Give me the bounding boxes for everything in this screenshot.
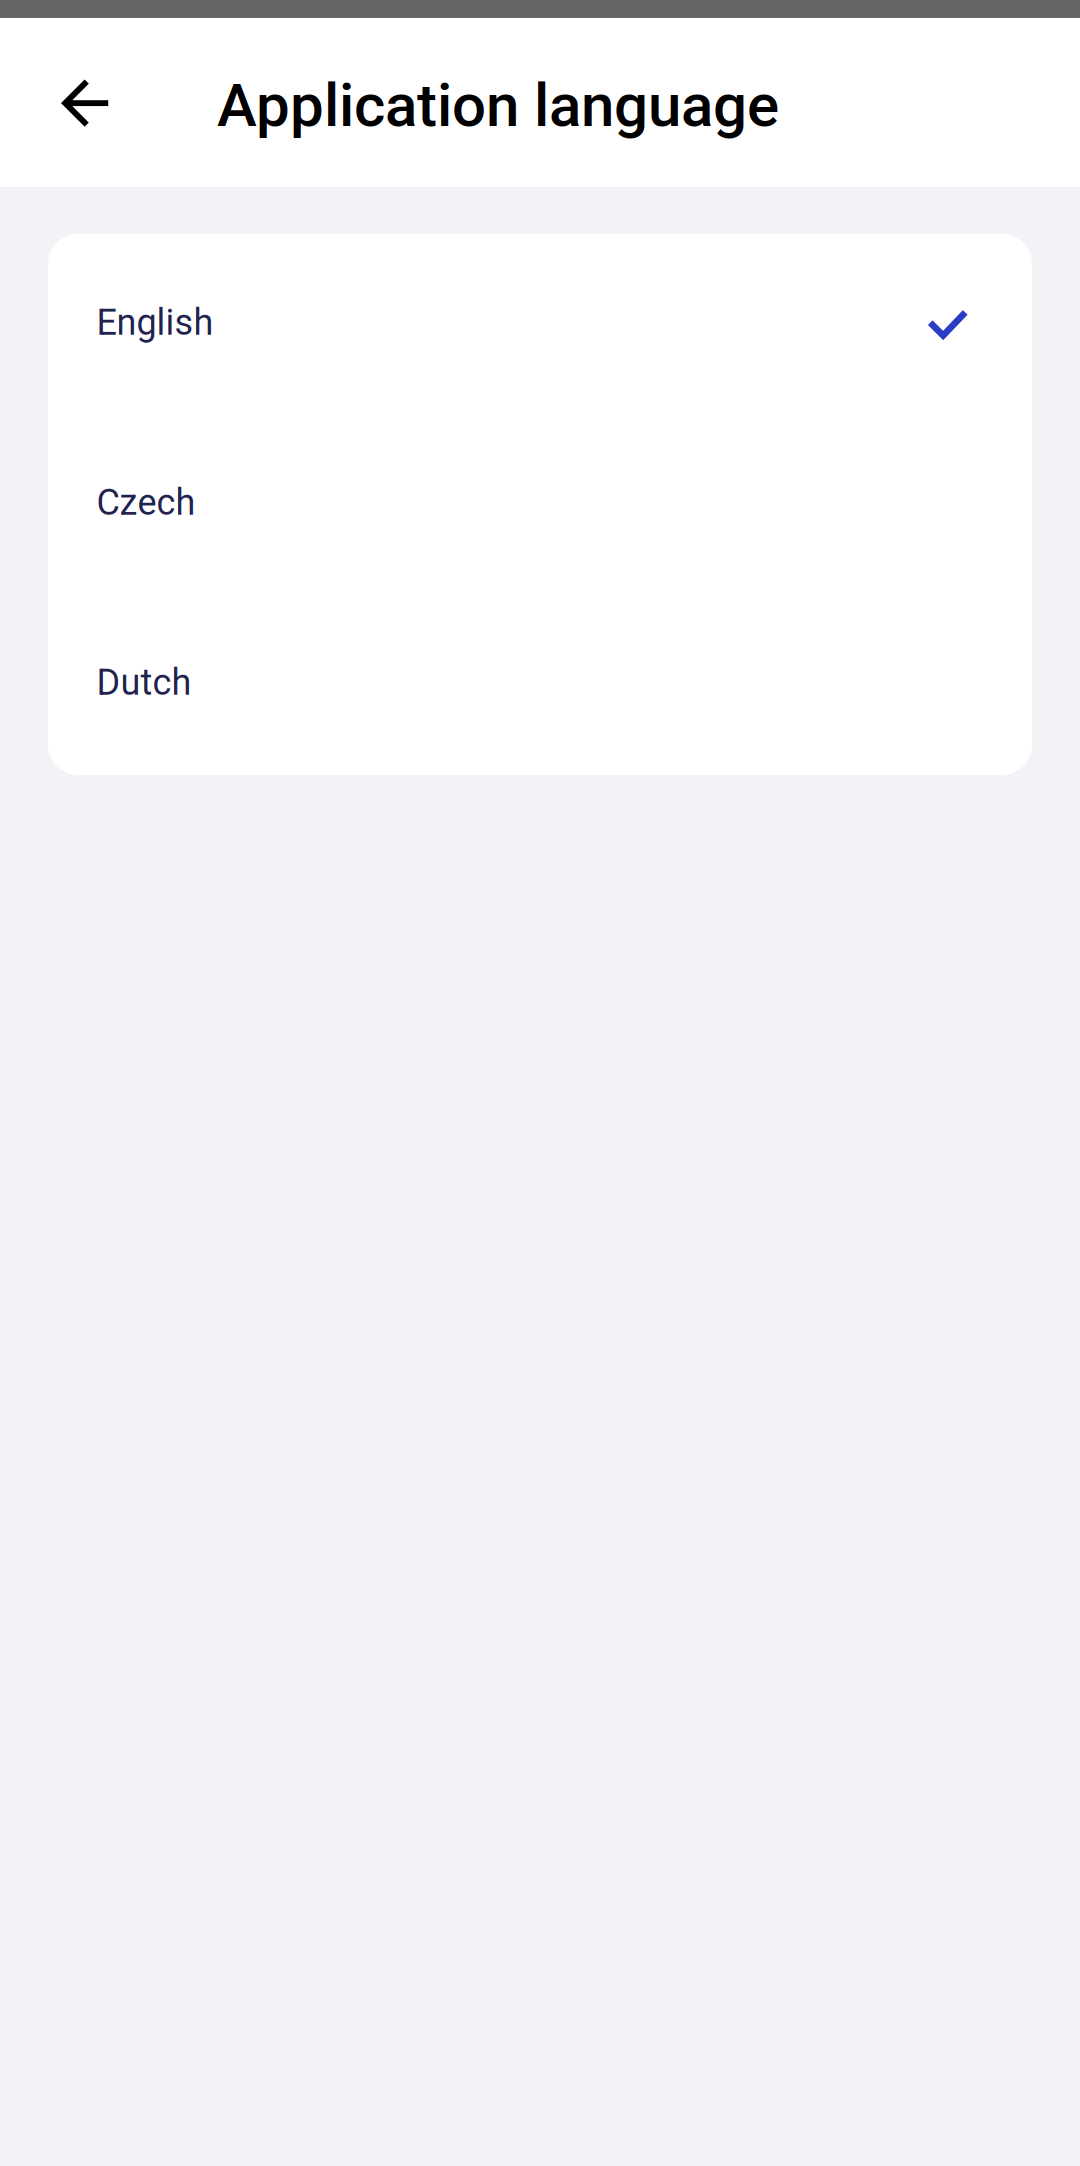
button[interactable]: Czech xyxy=(48,414,1032,594)
staticText: Application language xyxy=(217,70,779,141)
staticText: Czech xyxy=(96,481,195,524)
button[interactable]: Back xyxy=(0,18,109,187)
staticText: Dutch xyxy=(96,661,191,704)
button[interactable]: Dutch xyxy=(48,594,1032,774)
button[interactable]: English xyxy=(48,234,1032,414)
staticText: English xyxy=(96,301,213,344)
